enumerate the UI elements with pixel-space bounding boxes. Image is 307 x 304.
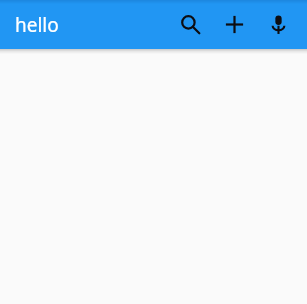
button[interactable]: Add [216, 6, 253, 43]
staticText: hello [15, 12, 59, 38]
button[interactable]: Search [172, 6, 209, 43]
button[interactable]: Voice search [260, 6, 297, 43]
